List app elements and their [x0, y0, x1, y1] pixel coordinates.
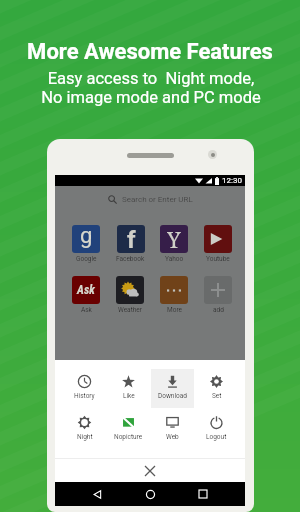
button[interactable]: Ask — [72, 276, 100, 314]
button[interactable]: Weather — [116, 276, 144, 314]
button[interactable]: More — [160, 276, 188, 314]
staticText: History — [74, 392, 95, 400]
staticText: More Awesome Features — [27, 39, 273, 65]
button[interactable]: add — [204, 276, 232, 314]
button[interactable]: Y — [160, 225, 188, 263]
staticText: Download — [158, 392, 187, 400]
button[interactable]: g — [72, 225, 100, 263]
staticText: 12:30 — [222, 176, 242, 185]
staticText: Weather — [118, 306, 143, 314]
button[interactable]: Back — [86, 483, 108, 505]
staticText: Nopicture — [114, 433, 143, 441]
button[interactable]: Home — [139, 483, 161, 505]
staticText: Facebook — [116, 255, 145, 263]
button[interactable]: Set — [195, 369, 238, 408]
staticText: g — [80, 225, 93, 249]
staticText: Web — [166, 433, 179, 441]
staticText: Ask — [77, 283, 95, 297]
staticText: f — [127, 226, 136, 253]
button[interactable]: Recents — [192, 483, 214, 505]
button[interactable]: Like — [107, 369, 150, 408]
button[interactable]: Nopicture — [107, 410, 150, 449]
staticText: Set — [212, 392, 222, 400]
button[interactable]: History — [63, 369, 106, 408]
staticText: Easy access to Night mode, No image mode… — [41, 69, 261, 107]
staticText: Google — [76, 255, 97, 263]
button[interactable]: Web — [151, 410, 194, 449]
staticText: Youtube — [206, 255, 230, 263]
staticText: Yahoo — [165, 255, 184, 263]
staticText: add — [213, 306, 224, 314]
button[interactable]: f — [116, 225, 145, 263]
button[interactable]: Night — [63, 410, 106, 449]
button[interactable]: Search or Enter URL — [55, 186, 245, 213]
staticText: Y — [167, 225, 181, 252]
button[interactable]: Logout — [195, 410, 238, 449]
button[interactable]: Youtube — [204, 225, 232, 263]
staticText: Search or Enter URL — [122, 195, 193, 204]
staticText: More — [167, 306, 182, 314]
staticText: Like — [123, 392, 135, 400]
staticText: Logout — [206, 433, 227, 441]
button[interactable]: Close — [55, 459, 245, 482]
staticText: Night — [77, 433, 93, 441]
button[interactable]: Download — [151, 369, 194, 408]
staticText: Ask — [81, 306, 92, 314]
